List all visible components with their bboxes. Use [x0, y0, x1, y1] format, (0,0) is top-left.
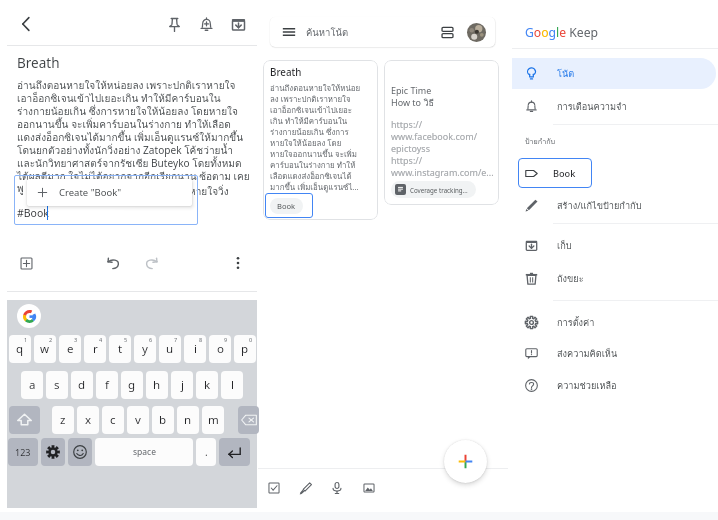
button[interactable]: ค้นหาโน้ต: [270, 17, 495, 47]
staticText: .: [205, 445, 208, 459]
button[interactable]: a: [21, 371, 43, 399]
button[interactable]: z: [52, 406, 74, 434]
staticText: x: [85, 412, 92, 428]
button[interactable]: สร้าง/แก้ไขป้ายกำกับ: [512, 190, 716, 221]
staticText: n: [184, 412, 192, 428]
button[interactable]: เก็บ: [512, 230, 716, 261]
button[interactable]: Pin: [161, 11, 187, 37]
button[interactable]: Add: [14, 251, 38, 275]
staticText: Breath: [17, 54, 60, 72]
button[interactable]: t: [109, 335, 131, 363]
staticText: 8: [199, 336, 203, 343]
staticText: f: [105, 377, 109, 393]
staticText: e: [67, 341, 74, 357]
staticText: #Book: [17, 206, 49, 220]
button[interactable]: Emoji: [68, 438, 92, 466]
button[interactable]: g: [121, 371, 143, 399]
button[interactable]: w: [34, 335, 56, 363]
staticText: https:// www.facebook.com/ epictoyss htt…: [391, 118, 494, 178]
staticText: c: [110, 412, 116, 428]
staticText: ค้นหาโน้ต: [306, 25, 349, 40]
button[interactable]: Numbers: [8, 438, 38, 466]
button[interactable]: New list: [261, 475, 287, 501]
button[interactable]: h: [146, 371, 168, 399]
button[interactable]: q: [9, 335, 31, 363]
button[interactable]: x: [77, 406, 99, 434]
staticText: หายใจวิ่ง: [189, 183, 229, 199]
button[interactable]: New note with image: [356, 475, 382, 501]
button[interactable]: Undo: [101, 251, 125, 275]
button[interactable]: .: [196, 438, 216, 466]
staticText: 0: [249, 336, 253, 343]
button[interactable]: Back: [12, 10, 40, 38]
staticText: โน้ต: [557, 66, 575, 81]
button[interactable]: space: [95, 438, 193, 466]
button[interactable]: o: [209, 335, 231, 363]
staticText: 7: [174, 336, 178, 343]
button[interactable]: โน้ต: [512, 58, 716, 89]
button[interactable]: Keyboard settings: [41, 438, 65, 466]
button[interactable]: Backspace: [238, 406, 259, 434]
button[interactable]: u: [159, 335, 181, 363]
button[interactable]: Enter: [219, 438, 250, 466]
button[interactable]: Reminder: [193, 11, 219, 37]
button[interactable]: Shift: [9, 406, 40, 434]
button[interactable]: s: [46, 371, 68, 399]
button[interactable]: i: [184, 335, 206, 363]
button[interactable]: n: [177, 406, 199, 434]
staticText: j: [181, 377, 184, 393]
button[interactable]: Archive: [225, 11, 251, 37]
button[interactable]: [14, 175, 198, 225]
button[interactable]: Google search: [17, 304, 41, 328]
staticText: อ่านถึงตอนหายใจให้หน่อยลง เพราะปกติเราหา…: [17, 77, 259, 196]
staticText: h: [153, 377, 161, 393]
button[interactable]: e: [59, 335, 81, 363]
button[interactable]: ส่งความคิดเห็น: [512, 338, 716, 369]
button[interactable]: Book: [518, 158, 592, 188]
button[interactable]: p: [234, 335, 256, 363]
staticText: ป้ายกำกับ: [525, 136, 556, 147]
staticText: q: [16, 341, 24, 357]
staticText: 3: [74, 336, 78, 343]
button[interactable]: k: [196, 371, 218, 399]
staticText: 1: [24, 336, 28, 343]
button[interactable]: Redo: [139, 251, 163, 275]
button[interactable]: Create new note: [444, 440, 487, 483]
button[interactable]: l: [221, 371, 243, 399]
button[interactable]: v: [127, 406, 149, 434]
staticText: v: [135, 412, 141, 428]
staticText: d: [78, 377, 86, 393]
button[interactable]: c: [102, 406, 124, 434]
button[interactable]: Epic Time How to วิธี: [384, 60, 499, 205]
button[interactable]: d: [71, 371, 93, 399]
button[interactable]: Coverage tracking...: [391, 181, 476, 198]
staticText: Google Keep: [525, 24, 599, 41]
staticText: Book: [277, 201, 296, 211]
staticText: t: [118, 341, 123, 357]
button[interactable]: ถังขยะ: [512, 263, 716, 294]
staticText: y: [142, 341, 148, 357]
button[interactable]: j: [171, 371, 193, 399]
button[interactable]: การตั้งค่า: [512, 307, 716, 338]
button[interactable]: Book: [270, 198, 303, 214]
staticText: 4: [99, 336, 103, 343]
staticText: w: [40, 341, 50, 357]
staticText: เก็บ: [557, 238, 572, 253]
staticText: 6: [149, 336, 153, 343]
staticText: สร้าง/แก้ไขป้ายกำกับ: [557, 198, 642, 213]
button[interactable]: New drawing: [292, 475, 318, 501]
button[interactable]: y: [134, 335, 156, 363]
staticText: p: [241, 341, 249, 357]
button[interactable]: การเตือนความจำ: [512, 91, 716, 122]
button[interactable]: Create "Book": [27, 179, 192, 206]
staticText: b: [159, 412, 167, 428]
button[interactable]: New voice note: [324, 475, 350, 501]
button[interactable]: ความช่วยเหลือ: [512, 370, 716, 401]
button[interactable]: Breath: [263, 60, 378, 220]
button[interactable]: f: [96, 371, 118, 399]
button[interactable]: m: [202, 406, 224, 434]
button[interactable]: More options: [226, 251, 250, 275]
button[interactable]: r: [84, 335, 106, 363]
staticText: o: [217, 341, 224, 357]
button[interactable]: b: [152, 406, 174, 434]
